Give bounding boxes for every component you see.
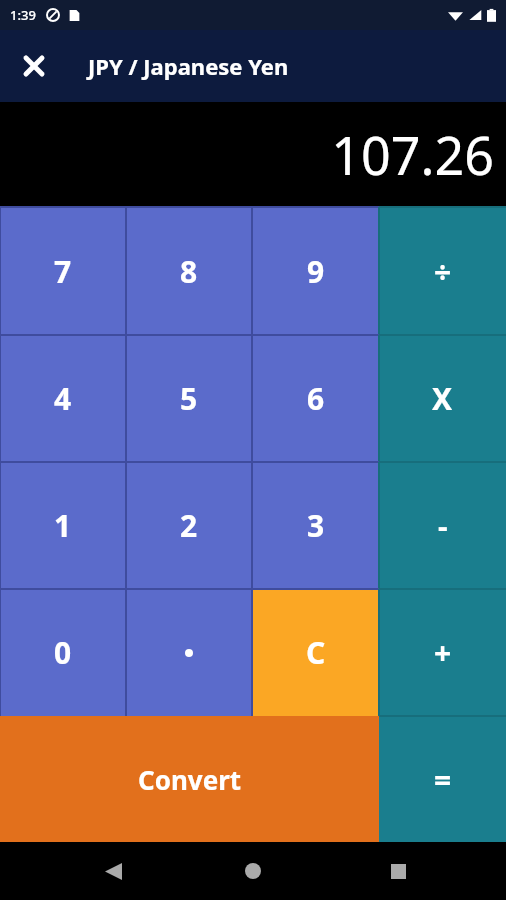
staticText: 3 xyxy=(307,505,325,546)
staticText: ÷ xyxy=(434,251,452,292)
button[interactable]: 8 xyxy=(126,207,252,335)
button[interactable]: C xyxy=(252,589,379,716)
staticText: 1 xyxy=(54,505,72,546)
button[interactable]: 7 xyxy=(0,207,126,335)
button[interactable]: 5 xyxy=(126,335,252,462)
button[interactable]: 2 xyxy=(126,462,252,589)
staticText: Convert xyxy=(138,762,242,797)
staticText: 1:39 xyxy=(10,6,36,24)
staticText: + xyxy=(434,632,452,673)
button[interactable]: 6 xyxy=(252,335,379,462)
staticText: 107.26 xyxy=(331,119,494,190)
staticText: 5 xyxy=(180,378,198,419)
button[interactable]: Home xyxy=(225,842,281,900)
staticText: - xyxy=(438,505,448,546)
staticText: 7 xyxy=(54,251,72,292)
button[interactable]: 4 xyxy=(0,335,126,462)
staticText: 8 xyxy=(180,251,198,292)
staticText: = xyxy=(434,759,452,800)
staticText: 4 xyxy=(54,378,72,419)
button[interactable]: + xyxy=(379,589,506,716)
button[interactable]: 1 xyxy=(0,462,126,589)
button[interactable]: Back xyxy=(85,842,141,900)
staticText: 9 xyxy=(307,251,325,292)
button[interactable]: 9 xyxy=(252,207,379,335)
button[interactable]: 3 xyxy=(252,462,379,589)
staticText: X xyxy=(432,378,453,419)
staticText: C xyxy=(306,632,326,673)
button[interactable]: ÷ xyxy=(379,207,506,335)
button[interactable] xyxy=(126,589,252,716)
button[interactable]: 0 xyxy=(0,589,126,716)
button[interactable]: Convert xyxy=(0,716,379,842)
button[interactable]: Close xyxy=(10,42,58,90)
button[interactable]: Recent apps xyxy=(370,842,426,900)
button[interactable]: X xyxy=(379,335,506,462)
staticText: 0 xyxy=(54,632,72,673)
staticText: JPY / Japanese Yen xyxy=(88,51,289,81)
staticText: 2 xyxy=(180,505,198,546)
button[interactable]: = xyxy=(379,716,506,842)
button[interactable]: - xyxy=(379,462,506,589)
staticText: 6 xyxy=(307,378,325,419)
